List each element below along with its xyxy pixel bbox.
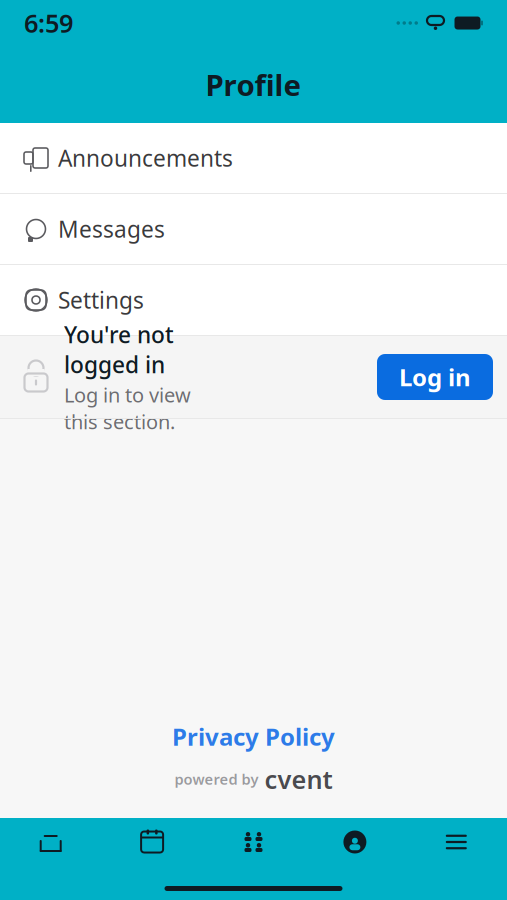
- staticText: Profile: [205, 65, 301, 104]
- button[interactable]: More: [406, 820, 507, 864]
- button[interactable]: Profile: [304, 820, 406, 864]
- button[interactable]: Log in: [377, 354, 493, 400]
- staticText: cvent: [264, 762, 332, 796]
- staticText: Settings: [58, 285, 144, 315]
- staticText: Announcements: [58, 143, 233, 173]
- staticText: You're not logged in: [64, 319, 174, 379]
- button[interactable]: Messages: [0, 194, 507, 265]
- staticText: Messages: [58, 214, 165, 244]
- staticText: 6:59: [24, 6, 73, 40]
- staticText: Log in: [399, 361, 471, 393]
- button[interactable]: Schedule: [101, 820, 203, 864]
- button[interactable]: Settings: [0, 265, 507, 336]
- staticText: Log in to view this section.: [64, 381, 191, 435]
- button[interactable]: Home: [0, 820, 101, 864]
- button[interactable]: Attendees: [203, 820, 304, 864]
- button[interactable]: Announcements: [0, 123, 507, 194]
- button[interactable]: Privacy Policy: [172, 720, 335, 752]
- staticText: Privacy Policy: [172, 720, 335, 752]
- staticText: powered by: [174, 769, 258, 789]
